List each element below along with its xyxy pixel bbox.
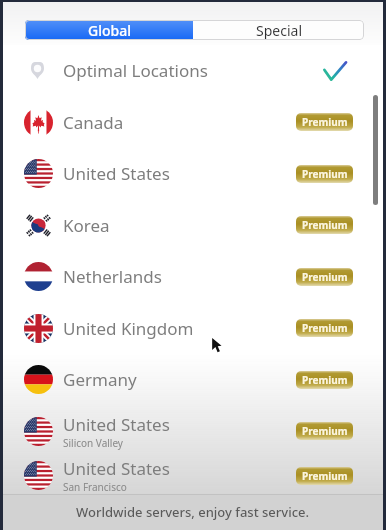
staticText: Special (256, 21, 302, 40)
button[interactable]: Optimal Locations (3, 45, 383, 96)
staticText: Netherlands (63, 265, 162, 288)
button[interactable]: Premium (296, 371, 353, 389)
staticText: Korea (63, 214, 110, 237)
button[interactable]: United States (3, 148, 383, 199)
button[interactable]: Premium (296, 165, 353, 183)
button[interactable]: Netherlands (3, 251, 383, 302)
button[interactable]: Germany (3, 354, 383, 405)
staticText: San Francisco (63, 480, 127, 494)
button[interactable]: United States (3, 405, 383, 457)
staticText: Global (88, 21, 131, 40)
staticText: Premium (302, 270, 348, 284)
button[interactable]: United States (3, 457, 383, 494)
staticText: Silicon Valley (63, 436, 123, 450)
staticText: United States (63, 413, 170, 436)
staticText: Premium (302, 167, 348, 181)
other: Selected (324, 62, 346, 80)
staticText: Premium (302, 469, 348, 483)
button[interactable]: Premium (296, 422, 353, 440)
button[interactable]: Special (193, 20, 364, 40)
staticText: Premium (302, 115, 348, 129)
staticText: Optimal Locations (63, 59, 208, 82)
button[interactable]: Premium (296, 467, 353, 485)
button[interactable]: Premium (296, 216, 353, 234)
staticText: United States (63, 162, 170, 185)
button[interactable]: Canada (3, 96, 383, 148)
button[interactable]: Premium (296, 113, 353, 131)
staticText: United States (63, 457, 170, 480)
staticText: Germany (63, 368, 137, 391)
staticText: Worldwide servers, enjoy fast service. (76, 503, 310, 521)
staticText: Premium (302, 373, 348, 387)
staticText: Premium (302, 321, 348, 335)
staticText: Premium (302, 424, 348, 438)
button[interactable]: Korea (3, 199, 383, 251)
staticText: United Kingdom (63, 317, 194, 340)
button[interactable]: United Kingdom (3, 302, 383, 354)
staticText: Premium (302, 218, 348, 232)
button[interactable]: Global (25, 20, 193, 40)
staticText: Canada (63, 111, 124, 134)
button[interactable]: Premium (296, 319, 353, 337)
button[interactable]: Premium (296, 268, 353, 286)
